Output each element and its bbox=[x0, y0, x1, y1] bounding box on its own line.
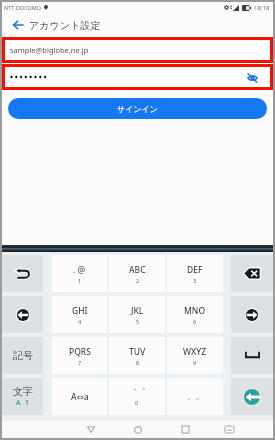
button[interactable]: Show password bbox=[5, 67, 270, 87]
button[interactable]: MNO bbox=[167, 296, 223, 333]
button[interactable]: 記号 bbox=[2, 337, 43, 374]
staticText: 9 bbox=[193, 359, 197, 366]
staticText: DEF bbox=[187, 264, 203, 276]
button[interactable]: 文字 bbox=[2, 378, 43, 415]
staticText: アカウント設定 bbox=[29, 19, 101, 32]
button[interactable]: TUV bbox=[109, 337, 165, 374]
staticText: 文字 bbox=[13, 385, 33, 398]
staticText: 、。 bbox=[187, 391, 204, 402]
staticText: GHI bbox=[72, 305, 88, 317]
other: Move left bbox=[16, 308, 30, 322]
button[interactable]: Move right bbox=[231, 296, 273, 333]
button[interactable]: サインイン bbox=[8, 98, 267, 119]
button[interactable]: PQRS bbox=[52, 337, 107, 374]
other: Space bbox=[245, 352, 260, 359]
staticText: sample@biglobe.ne.jp bbox=[10, 45, 89, 55]
staticText: 1 bbox=[25, 398, 30, 408]
staticText: JKL bbox=[131, 305, 144, 317]
button[interactable]: Show password bbox=[245, 70, 260, 85]
staticText: A⇔a bbox=[71, 391, 89, 403]
staticText: NTT DOCOMO bbox=[4, 4, 42, 11]
staticText: PQRS bbox=[69, 346, 91, 358]
button[interactable]: ゛゜ bbox=[109, 378, 165, 415]
button[interactable]: DEF bbox=[167, 255, 223, 292]
staticText: ABC bbox=[129, 264, 146, 276]
staticText: 2 bbox=[136, 277, 140, 284]
staticText: 18:18 bbox=[254, 4, 270, 12]
button[interactable]: Back bbox=[2, 13, 29, 37]
button[interactable]: . @ bbox=[52, 255, 107, 292]
button[interactable]: ABC bbox=[109, 255, 165, 292]
button[interactable]: Move left bbox=[2, 296, 43, 333]
other: Move right bbox=[245, 308, 259, 322]
staticText: 0 bbox=[135, 399, 139, 406]
button[interactable]: 、。 bbox=[167, 378, 223, 415]
button[interactable]: JKL bbox=[109, 296, 165, 333]
staticText: 4 bbox=[78, 318, 82, 325]
button[interactable]: Home bbox=[129, 421, 146, 438]
other: Backspace bbox=[244, 268, 260, 279]
other: Undo bbox=[15, 268, 30, 279]
button[interactable]: Recents bbox=[177, 421, 194, 438]
staticText: . @ bbox=[73, 264, 86, 276]
staticText: WXYZ bbox=[183, 346, 207, 358]
button[interactable]: sample@biglobe.ne.jp bbox=[5, 40, 270, 60]
staticText: 3 bbox=[193, 277, 197, 284]
other: Enter bbox=[243, 388, 261, 406]
button[interactable]: Backspace bbox=[231, 255, 273, 292]
staticText: TUV bbox=[129, 346, 146, 358]
staticText: 記号 bbox=[13, 349, 33, 362]
staticText: 7 bbox=[78, 359, 82, 366]
staticText: 6 bbox=[193, 318, 197, 325]
staticText: 1 bbox=[78, 277, 82, 284]
button[interactable]: A⇔a bbox=[52, 378, 107, 415]
staticText: 5 bbox=[136, 318, 140, 325]
staticText: 8 bbox=[136, 359, 140, 366]
button[interactable]: Space bbox=[231, 337, 273, 374]
button[interactable]: Enter bbox=[231, 378, 273, 415]
staticText: ゛゜ bbox=[128, 387, 146, 398]
button[interactable]: Hide keyboard bbox=[221, 421, 238, 438]
button[interactable]: WXYZ bbox=[167, 337, 223, 374]
staticText: サインイン bbox=[117, 104, 158, 114]
button[interactable]: Back bbox=[82, 421, 99, 438]
staticText: A bbox=[16, 398, 21, 408]
button[interactable]: Undo bbox=[2, 255, 43, 292]
staticText: MNO bbox=[184, 305, 206, 317]
button[interactable]: GHI bbox=[52, 296, 107, 333]
